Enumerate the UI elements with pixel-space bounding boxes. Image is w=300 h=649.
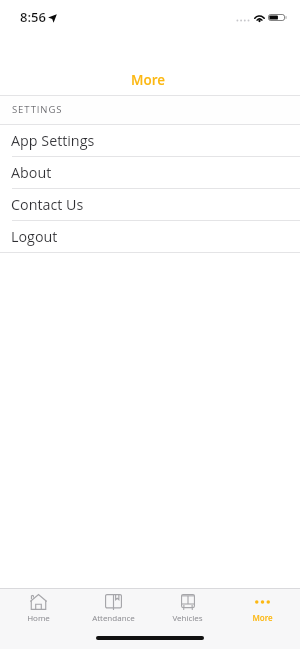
other: Attendance <box>105 594 122 610</box>
other: Vehicles <box>181 594 195 610</box>
staticText: About <box>11 163 52 182</box>
staticText: Logout <box>11 227 58 246</box>
button[interactable]: App Settings <box>0 125 300 156</box>
staticText: More <box>252 612 273 623</box>
staticText: SETTINGS <box>12 103 63 116</box>
button[interactable]: Attendance <box>76 589 150 634</box>
staticText: Contact Us <box>11 195 84 214</box>
button[interactable]: More <box>225 589 299 634</box>
staticText: 8:56 <box>20 8 46 26</box>
button[interactable]: Logout <box>0 221 300 252</box>
staticText: Attendance <box>92 612 135 623</box>
button[interactable]: Contact Us <box>0 189 300 220</box>
button[interactable]: Home <box>1 589 75 634</box>
staticText: More <box>131 71 166 89</box>
staticText: Home <box>27 612 50 623</box>
button[interactable]: Vehicles <box>150 589 224 634</box>
other: Home <box>30 594 47 610</box>
button[interactable]: About <box>0 157 300 188</box>
staticText: App Settings <box>11 131 95 150</box>
other: More <box>255 599 270 605</box>
staticText: Vehicles <box>172 612 203 623</box>
